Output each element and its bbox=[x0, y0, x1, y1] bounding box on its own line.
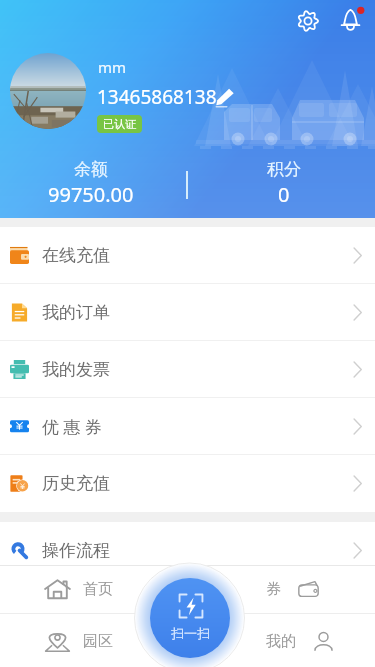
staticText: 首页 bbox=[83, 580, 113, 599]
button[interactable]: 余额 bbox=[0, 159, 181, 208]
button[interactable]: 在线充值 bbox=[0, 227, 375, 284]
button[interactable]: 已认证 bbox=[97, 115, 142, 133]
button[interactable]: 我的发票 bbox=[0, 341, 375, 398]
button[interactable]: 扫一扫 bbox=[150, 578, 230, 658]
button[interactable]: 园区 bbox=[44, 627, 113, 655]
button[interactable]: 历史充值 bbox=[0, 455, 375, 512]
button[interactable]: Edit phone number bbox=[213, 85, 236, 108]
staticText: 积分 bbox=[267, 159, 301, 180]
button[interactable]: 优 惠 券 bbox=[0, 398, 375, 455]
staticText: 99750.00 bbox=[48, 181, 134, 208]
button[interactable]: 券 bbox=[266, 575, 320, 603]
staticText: 余额 bbox=[74, 159, 108, 180]
staticText: 我的订单 bbox=[42, 302, 110, 323]
staticText: 券 bbox=[266, 580, 281, 599]
staticText: 历史充值 bbox=[42, 473, 110, 494]
staticText: mm bbox=[98, 57, 127, 77]
button[interactable]: 首页 bbox=[44, 575, 113, 603]
button[interactable]: Profile photo bbox=[10, 53, 86, 129]
staticText: 已认证 bbox=[103, 117, 136, 131]
button[interactable]: 操作流程 bbox=[0, 522, 375, 579]
staticText: 园区 bbox=[83, 632, 113, 651]
staticText: 扫一扫 bbox=[171, 625, 210, 641]
staticText: 操作流程 bbox=[42, 540, 110, 561]
staticText: 联系客服 bbox=[42, 597, 110, 618]
button[interactable]: 联系客服 bbox=[0, 579, 375, 636]
button[interactable]: 我的订单 bbox=[0, 284, 375, 341]
staticText: 我的 bbox=[266, 632, 296, 651]
staticText: 我的发票 bbox=[42, 359, 110, 380]
staticText: 优 惠 券 bbox=[42, 415, 102, 438]
button[interactable]: Notifications bbox=[337, 6, 364, 33]
button[interactable]: 积分 bbox=[193, 159, 375, 208]
staticText: 0 bbox=[278, 181, 290, 208]
button[interactable]: Settings bbox=[296, 9, 320, 33]
staticText: 13465868138 bbox=[97, 84, 217, 110]
staticText: 在线充值 bbox=[42, 245, 110, 266]
button[interactable]: 我的 bbox=[266, 627, 335, 655]
